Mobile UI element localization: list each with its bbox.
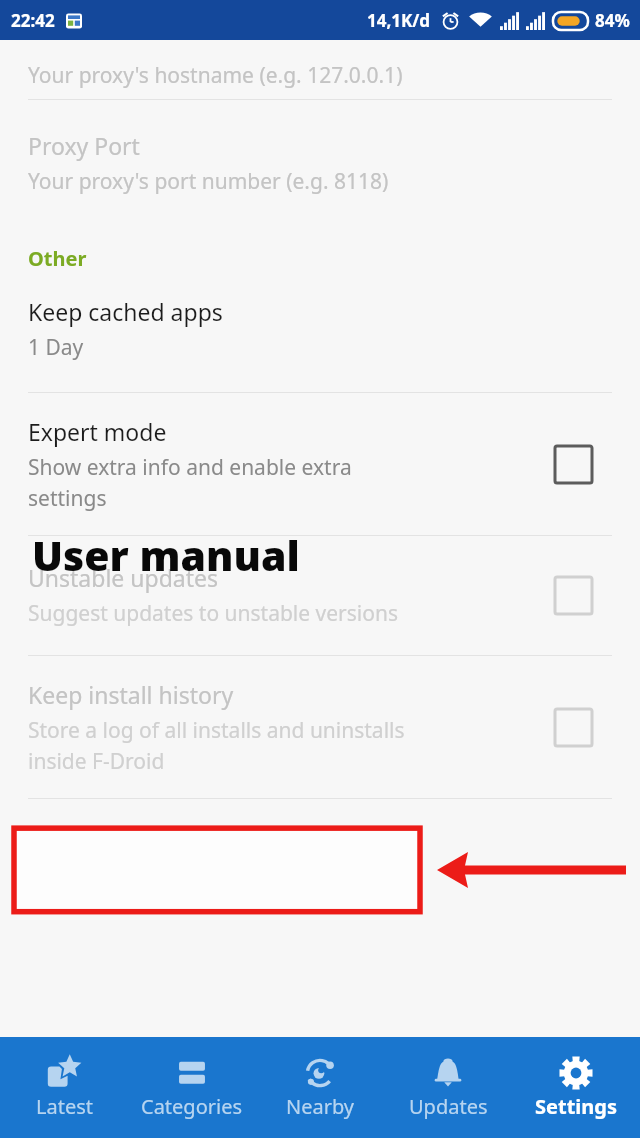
button[interactable]: Keep cached apps — [0, 296, 640, 392]
button[interactable]: Latest — [0, 1037, 128, 1138]
button[interactable]: Keep install history — [0, 656, 640, 798]
staticText: Updates — [409, 1093, 488, 1120]
button[interactable]: Proxy Port — [0, 100, 640, 223]
staticText: Latest — [36, 1093, 93, 1120]
staticText: 1 Day — [28, 333, 84, 362]
staticText: Keep install history — [28, 679, 234, 710]
staticText: Show extra info and enable extra setting… — [28, 453, 352, 512]
button[interactable]: Categories — [128, 1037, 256, 1138]
staticText: Settings — [535, 1093, 617, 1120]
button[interactable]: Settings — [512, 1037, 640, 1138]
staticText: 22:42 — [11, 9, 55, 32]
staticText: Unstable updates — [28, 562, 218, 593]
button[interactable]: Your proxy's hostname (e.g. 127.0.0.1) — [0, 40, 640, 99]
staticText: Store a log of all installs and uninstal… — [28, 716, 405, 775]
staticText: Suggest updates to unstable versions — [28, 599, 398, 628]
button[interactable]: Nearby — [256, 1037, 384, 1138]
staticText: Other — [28, 245, 87, 272]
staticText: Expert mode — [28, 416, 167, 447]
button[interactable]: Updates — [384, 1037, 512, 1138]
staticText: Keep cached apps — [28, 296, 223, 327]
button[interactable]: Unstable updates — [0, 536, 640, 655]
staticText: Your proxy's port number (e.g. 8118) — [28, 167, 389, 196]
staticText: Nearby — [286, 1093, 355, 1120]
staticText: User manual — [32, 527, 300, 583]
button[interactable]: Expert mode — [0, 393, 640, 535]
staticText: Your proxy's hostname (e.g. 127.0.0.1) — [28, 61, 403, 90]
staticText: 14,1K/d — [367, 9, 431, 32]
staticText: 84% — [595, 9, 630, 32]
staticText: Categories — [141, 1093, 243, 1120]
staticText: Proxy Port — [28, 130, 140, 161]
